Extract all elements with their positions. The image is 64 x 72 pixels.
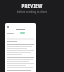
- button[interactable]: PREVIEW: [0, 3, 64, 9]
- staticText: before sending to client: [0, 10, 64, 14]
- staticText: PREVIEW: [0, 3, 64, 9]
- button[interactable]: [5, 23, 36, 72]
